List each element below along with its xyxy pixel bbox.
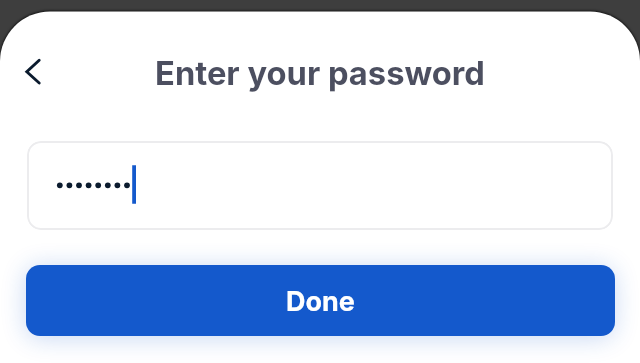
staticText: Enter your password (0, 53, 640, 93)
button[interactable] (27, 141, 613, 230)
button[interactable]: Back (12, 50, 54, 92)
button[interactable]: Done (26, 265, 615, 336)
staticText: Done (286, 285, 355, 318)
